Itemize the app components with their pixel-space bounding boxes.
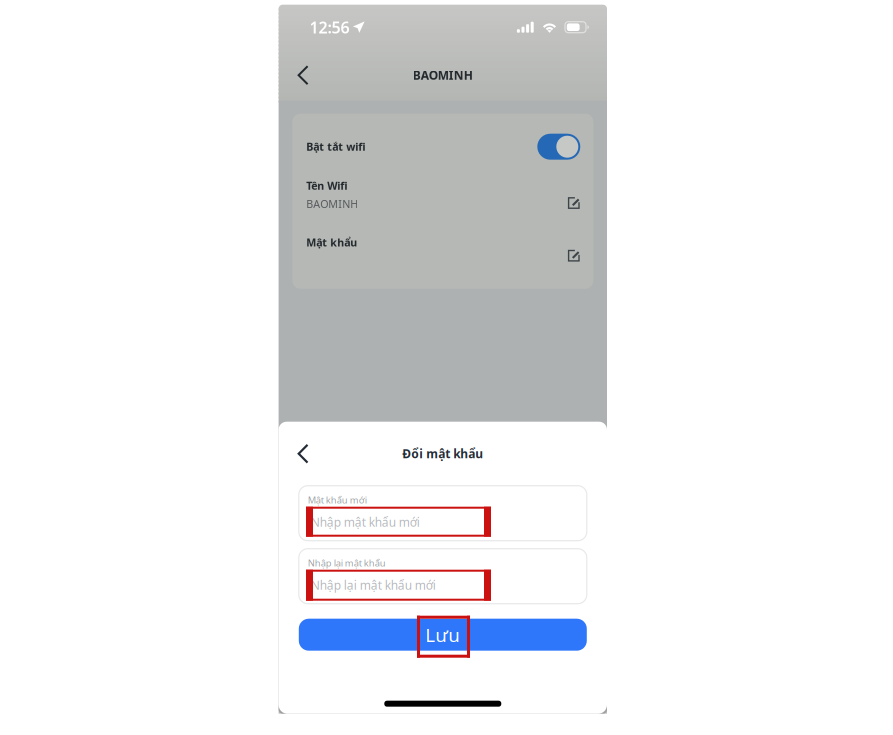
staticText: Bật tắt wifi: [306, 140, 365, 154]
button[interactable]: Edit wifi name: [567, 178, 580, 209]
staticText: Lưu: [425, 622, 460, 647]
staticText: Nhập mật khẩu mới: [311, 514, 420, 530]
staticText: Mật khẩu mới: [308, 494, 367, 506]
staticText: BAOMINH: [306, 197, 358, 211]
staticText: 12:56: [310, 17, 350, 38]
staticText: Nhập lại mật khẩu: [308, 557, 386, 569]
button[interactable]: Edit password: [567, 235, 580, 262]
button[interactable]: Back: [292, 59, 315, 91]
staticText: Đổi mật khẩu: [402, 446, 483, 462]
button[interactable]: Back: [292, 438, 315, 470]
staticText: Nhập lại mật khẩu mới: [311, 577, 436, 593]
button[interactable]: Lưu: [299, 619, 587, 651]
staticText: Tên Wifi: [306, 178, 347, 193]
staticText: Mật khẩu: [306, 235, 357, 249]
staticText: BAOMINH: [413, 67, 473, 83]
button[interactable]: Toggle wifi: [537, 134, 580, 160]
